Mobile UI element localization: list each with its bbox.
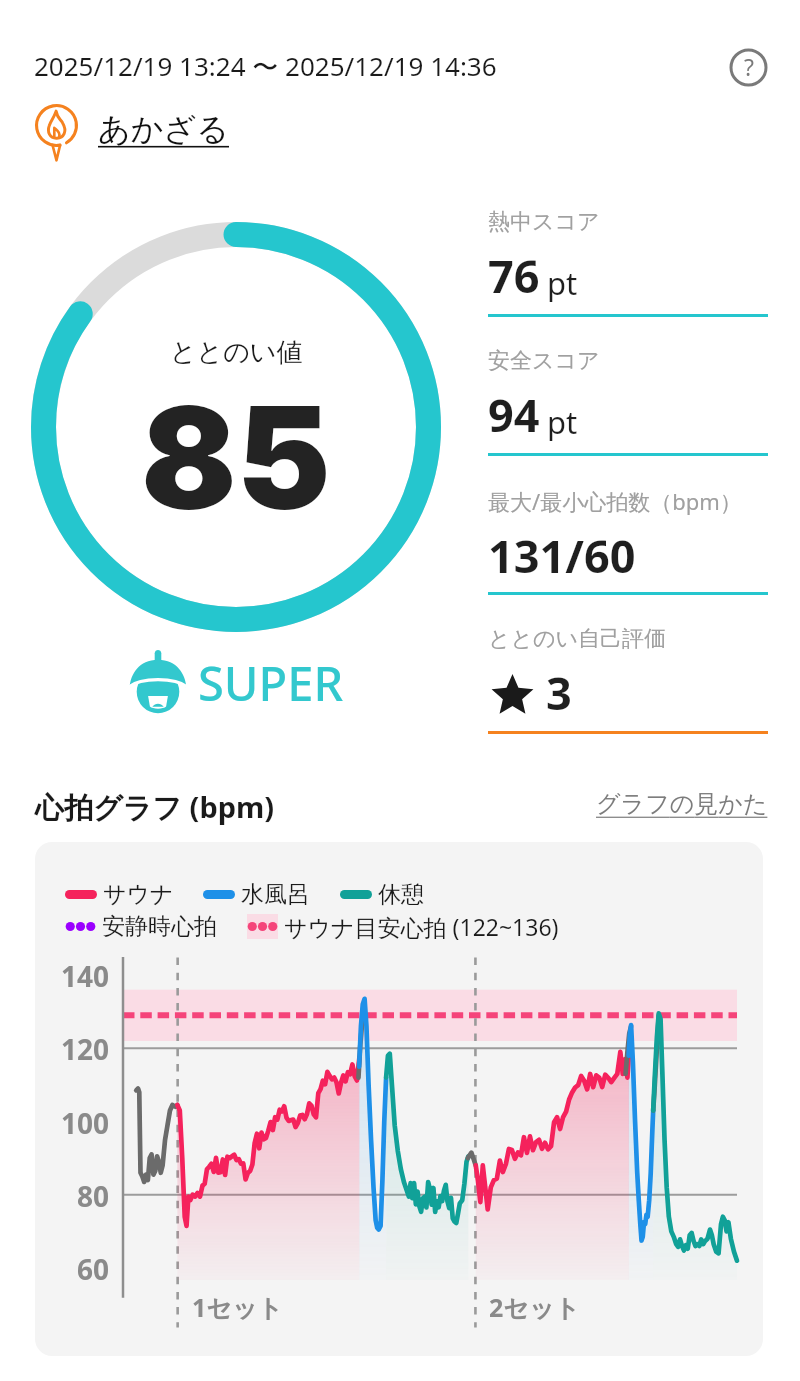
staticText: 94 (488, 384, 540, 445)
button[interactable]: Help (729, 48, 768, 87)
staticText: 3 (546, 662, 572, 723)
staticText: 80 (35, 1177, 109, 1215)
staticText: 水風呂 (241, 880, 310, 909)
staticText: pt (547, 401, 578, 443)
staticText: 131/60 (488, 525, 636, 586)
staticText: 心拍グラフ (bpm) (35, 787, 275, 827)
staticText: 1セット (192, 1290, 284, 1324)
staticText: SUPER (198, 651, 344, 715)
staticText: グラフの見かた (596, 789, 768, 819)
staticText: 100 (35, 1104, 109, 1142)
staticText: 熱中スコア (488, 208, 600, 236)
staticText: ととのい値 (170, 336, 303, 369)
staticText: サウナ (103, 880, 174, 909)
staticText: 85 (141, 372, 331, 543)
staticText: 安静時心拍 (102, 912, 217, 941)
staticText: 120 (35, 1030, 109, 1068)
button[interactable]: グラフの見かた (596, 789, 768, 819)
staticText: 60 (35, 1250, 109, 1288)
staticText: 2セット (489, 1290, 581, 1324)
staticText: 76 (488, 245, 540, 306)
staticText: 最大/最小心拍数（bpm） (488, 486, 742, 516)
staticText: 休憩 (378, 880, 424, 909)
staticText: ? (744, 51, 754, 82)
staticText: 安全スコア (488, 347, 600, 375)
staticText: 2025/12/19 13:24 〜 2025/12/19 14:36 (34, 48, 497, 84)
staticText: 140 (35, 957, 109, 995)
staticText: pt (547, 262, 578, 304)
staticText: ととのい自己評価 (488, 625, 667, 653)
staticText: あかざる (98, 109, 229, 149)
staticText: サウナ目安心拍 (122~136) (284, 911, 559, 942)
